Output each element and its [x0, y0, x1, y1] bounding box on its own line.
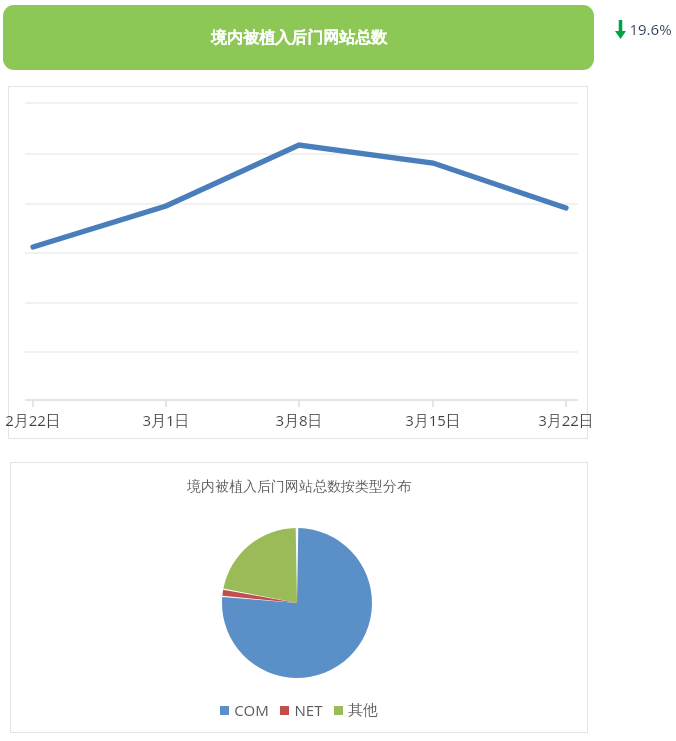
staticText: 3月8日 [275, 410, 323, 430]
button[interactable]: 其他 [334, 701, 378, 720]
staticText: NET [294, 700, 323, 720]
staticText: 19.6% [629, 19, 672, 39]
staticText: 境内被植入后门网站总数 [211, 28, 387, 48]
staticText: 3月15日 [405, 410, 461, 430]
other: Decrease 19.6 percent [615, 20, 626, 39]
staticText: 3月1日 [142, 410, 190, 430]
button[interactable]: NET [280, 700, 323, 720]
button[interactable]: 境内被植入后门网站总数 [3, 5, 594, 70]
staticText: 3月22日 [538, 410, 594, 430]
staticText: 2月22日 [5, 410, 61, 430]
button[interactable]: Decrease 19.6 percent [615, 19, 672, 39]
staticText: COM [234, 700, 269, 720]
button[interactable]: COM [220, 700, 269, 720]
staticText: 境内被植入后门网站总数按类型分布 [187, 478, 411, 496]
staticText: 其他 [348, 701, 378, 720]
